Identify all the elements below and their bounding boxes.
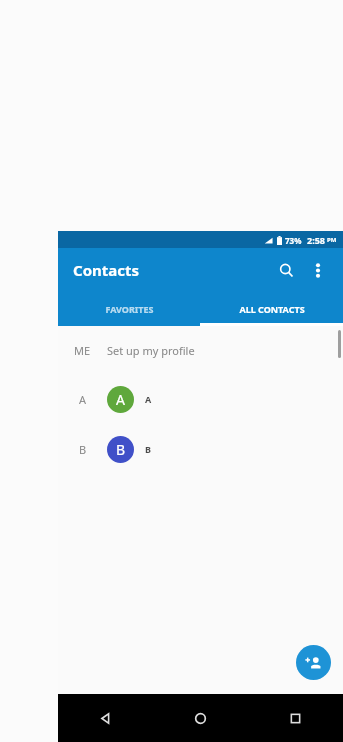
button[interactable]: Back — [58, 694, 153, 742]
button[interactable]: More options — [303, 255, 333, 285]
button[interactable]: Home — [153, 694, 248, 742]
button[interactable]: Add contact — [296, 645, 331, 680]
staticText: A — [145, 393, 152, 405]
staticText: B — [145, 443, 151, 455]
staticText: ALL CONTACTS — [239, 303, 305, 315]
button[interactable]: Search — [269, 253, 303, 287]
staticText: 73% — [285, 235, 302, 246]
staticText: ME — [74, 343, 91, 358]
staticText: FAVORITES — [105, 303, 154, 315]
button[interactable]: A — [58, 374, 343, 424]
button[interactable]: FAVORITES — [58, 292, 200, 326]
staticText: Set up my profile — [107, 343, 195, 358]
button[interactable]: ALL CONTACTS — [200, 292, 343, 326]
button[interactable]: ME — [58, 326, 343, 374]
staticText: PM — [327, 236, 337, 244]
staticText: A — [79, 392, 87, 407]
staticText: 2:58 — [307, 234, 325, 246]
staticText: B — [116, 440, 126, 459]
button[interactable]: Recent apps — [248, 694, 343, 742]
staticText: A — [116, 390, 125, 409]
button[interactable]: B — [58, 424, 343, 474]
staticText: Contacts — [73, 260, 140, 280]
staticText: B — [79, 442, 87, 457]
